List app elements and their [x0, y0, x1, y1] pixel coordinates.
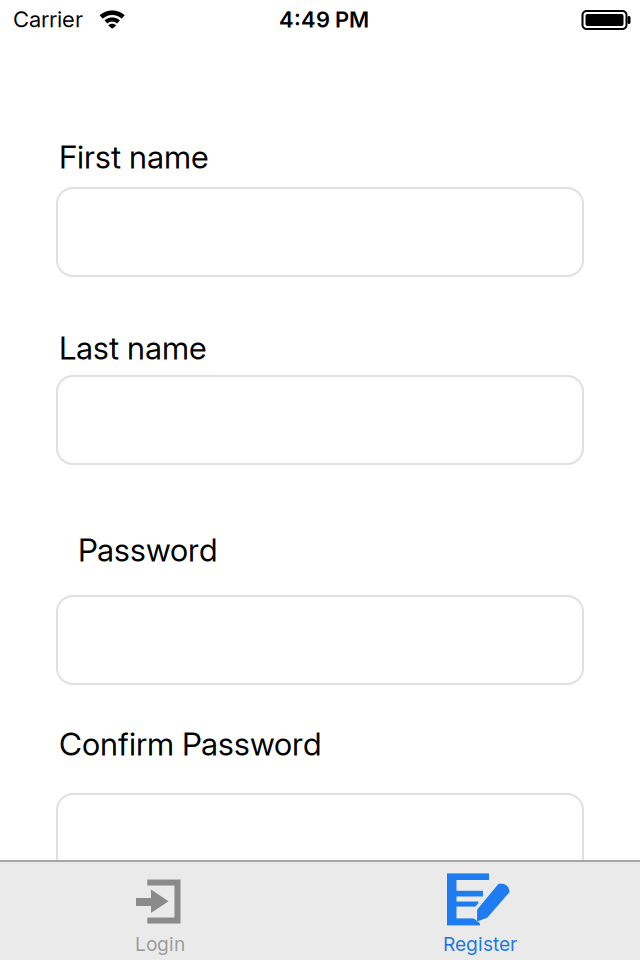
button[interactable]: Login: [0, 862, 320, 960]
staticText: Confirm Password: [59, 725, 322, 763]
staticText: Last name: [59, 329, 207, 367]
staticText: Password: [78, 531, 218, 569]
staticText: Login: [135, 932, 185, 956]
staticText: Register: [443, 932, 517, 956]
staticText: 4:49 PM: [279, 6, 369, 33]
staticText: First name: [59, 138, 209, 176]
staticText: Carrier: [13, 6, 83, 33]
button[interactable]: Register: [320, 862, 640, 960]
